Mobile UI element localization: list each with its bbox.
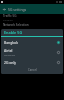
staticText: Disabled (3, 18, 13, 21)
button[interactable]: Traffic 5G (0, 14, 64, 21)
button[interactable]: 2G only (1, 57, 63, 67)
staticText: Enable 5G (4, 30, 23, 35)
button[interactable]: Cancel (26, 67, 39, 73)
button[interactable]: Bangkok (1, 37, 63, 47)
button[interactable]: Airtel (1, 47, 63, 57)
staticText: Network Selection (3, 23, 29, 27)
staticText: Bangkok (4, 40, 18, 45)
staticText: Cancel (28, 68, 37, 72)
button[interactable]: Network Selection (0, 23, 64, 27)
staticText: 5G settings (8, 7, 27, 12)
button[interactable]: Navigate up (0, 5, 8, 13)
staticText: Traffic 5G (3, 14, 17, 18)
staticText: 4G/3G/2G (4, 53, 16, 56)
staticText: 2G only (4, 60, 17, 65)
staticText: Airtel (4, 48, 13, 53)
